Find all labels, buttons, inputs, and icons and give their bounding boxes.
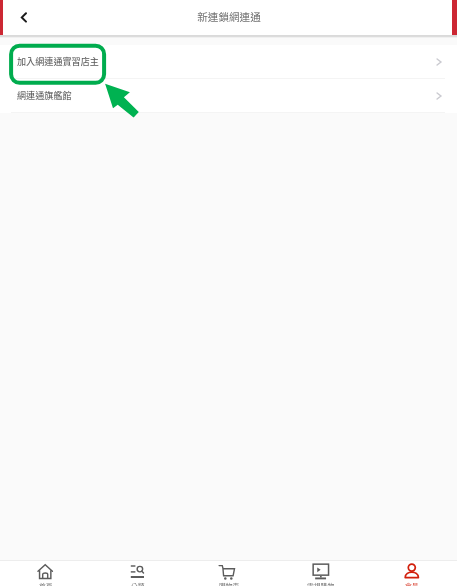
staticText: 會員	[405, 581, 419, 586]
staticText: 加入網連通實習店主	[17, 54, 99, 67]
staticText: 電視購物	[307, 581, 335, 586]
staticText: 首頁	[39, 581, 53, 586]
button[interactable]: 會員	[366, 560, 457, 586]
button[interactable]: 網連通旗艦館	[0, 79, 457, 112]
button[interactable]: 分類	[92, 560, 184, 586]
staticText: 購物車	[219, 581, 240, 586]
button[interactable]: 首頁	[0, 560, 92, 586]
button[interactable]: 電視購物	[275, 560, 366, 586]
button[interactable]: 加入網連通實習店主	[0, 45, 457, 78]
staticText: 網連通旗艦館	[17, 88, 72, 101]
staticText: 分類	[131, 581, 145, 586]
button[interactable]: 購物車	[184, 560, 275, 586]
button[interactable]: Back	[10, 4, 38, 32]
staticText: 新連鎖網連通	[197, 9, 261, 24]
